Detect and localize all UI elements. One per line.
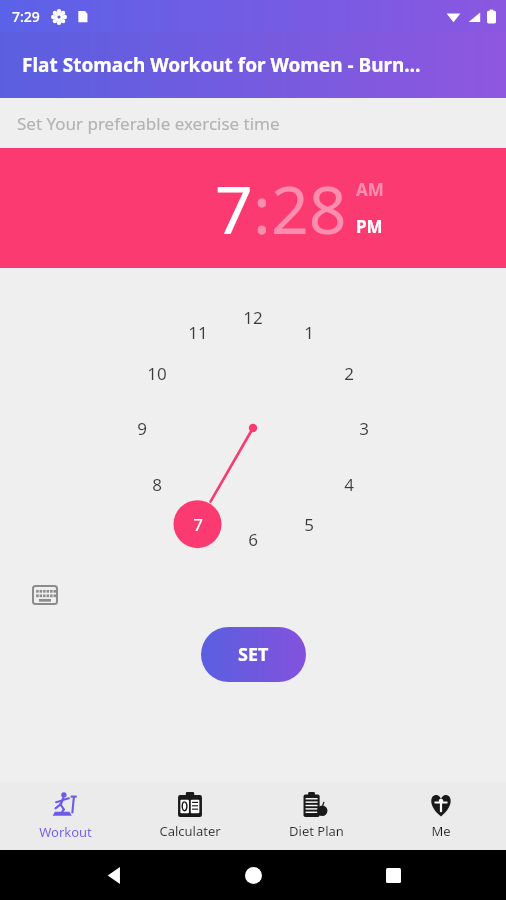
button[interactable]: Home (227, 850, 279, 900)
button[interactable]: 28 (271, 163, 347, 253)
staticText: PM (356, 215, 383, 238)
staticText: 1 (304, 321, 314, 344)
button[interactable]: PM (356, 215, 383, 238)
staticText: 7:29 (12, 7, 40, 26)
staticText: Diet Plan (289, 822, 344, 840)
staticText: 7 (215, 163, 253, 253)
staticText: : (253, 163, 271, 253)
button[interactable]: Back (88, 850, 140, 900)
button[interactable]: Switch to text input mode (31, 584, 59, 606)
staticText: Me (431, 822, 451, 840)
button[interactable]: 7 (215, 163, 253, 253)
button[interactable]: Diet Plan (256, 786, 376, 846)
staticText: 9 (137, 417, 147, 440)
staticText: 12 (243, 306, 263, 329)
button[interactable]: Me (381, 786, 501, 846)
staticText: 3 (359, 417, 369, 440)
button[interactable]: Workout (5, 785, 125, 847)
staticText: 7 (193, 513, 203, 536)
button[interactable]: Recent apps (367, 850, 419, 900)
staticText: 10 (147, 362, 167, 385)
button[interactable]: Clock face hour picker (0, 268, 506, 782)
staticText: Workout (39, 823, 92, 841)
staticText: SET (238, 642, 269, 667)
staticText: 4 (344, 473, 354, 496)
button[interactable]: SET (201, 627, 306, 682)
button[interactable]: AM (356, 178, 384, 201)
staticText: 8 (152, 473, 162, 496)
staticText: AM (356, 178, 384, 201)
staticText: Calculater (159, 822, 221, 840)
staticText: 11 (188, 321, 208, 344)
button[interactable]: Calculater (130, 786, 250, 846)
staticText: Flat Stomach Workout for Women - Burn… (22, 52, 421, 78)
staticText: 6 (248, 528, 258, 551)
staticText: 5 (304, 513, 314, 536)
staticText: Set Your preferable exercise time (17, 112, 280, 135)
staticText: 2 (344, 362, 354, 385)
staticText: 28 (271, 163, 347, 253)
